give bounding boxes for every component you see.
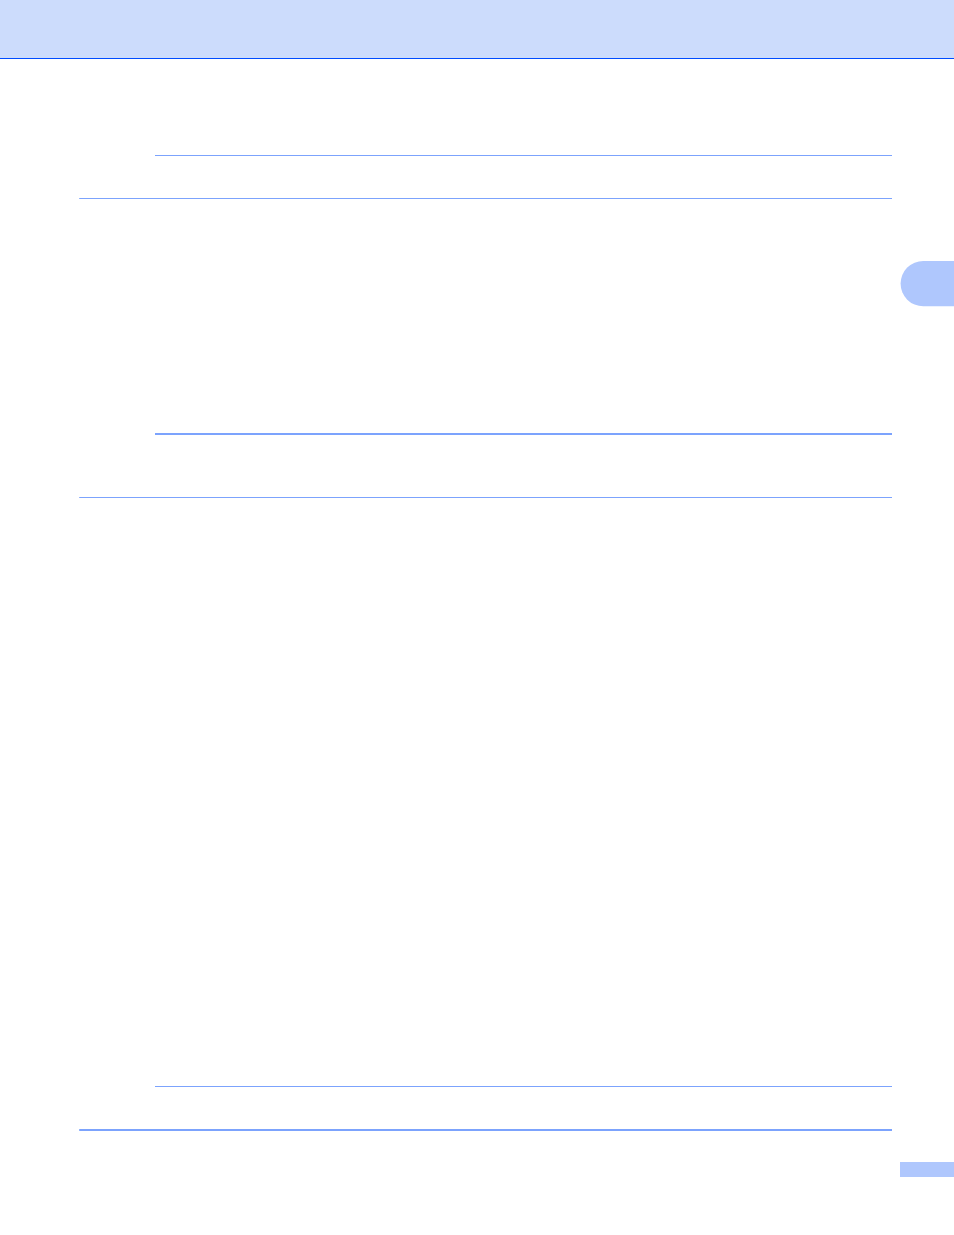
button[interactable]: Browse by category <box>0 434 954 497</box>
button[interactable]: Play all <box>32 394 164 434</box>
button[interactable]: Add to queue <box>228 394 268 434</box>
button[interactable]: Featured collection <box>0 198 954 434</box>
button[interactable]: Show more <box>0 1085 954 1128</box>
button[interactable]: Shuffle <box>180 394 220 434</box>
button[interactable]: All items <box>0 155 954 198</box>
button[interactable]: Details <box>0 497 954 1085</box>
button[interactable]: Scroll position <box>901 261 954 306</box>
